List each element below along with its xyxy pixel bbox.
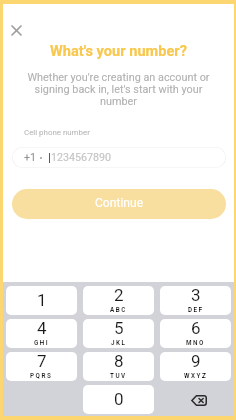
staticText: MNO	[186, 339, 205, 346]
button[interactable]: Backspace	[160, 385, 231, 414]
button[interactable]: 8	[83, 352, 154, 381]
staticText: What's your number?	[3, 42, 234, 59]
button[interactable]: +1	[12, 147, 226, 168]
staticText: Cell phone number	[24, 128, 90, 137]
staticText: 1	[37, 290, 47, 310]
staticText: 5	[114, 319, 124, 338]
staticText: +1	[24, 151, 37, 164]
staticText: PQRS	[30, 372, 53, 379]
button[interactable]: 5	[83, 319, 154, 348]
staticText: TUV	[110, 372, 127, 379]
staticText: 0	[114, 389, 124, 409]
staticText: 2	[114, 286, 124, 305]
staticText: 7	[37, 352, 47, 371]
staticText: DEF	[188, 306, 204, 313]
staticText: Whether you're creating an account or si…	[20, 71, 217, 108]
button[interactable]: 2	[83, 286, 154, 315]
button[interactable]: 1	[6, 286, 77, 315]
staticText: 3	[191, 286, 201, 305]
staticText: 9	[191, 352, 201, 371]
button[interactable]: 7	[6, 352, 77, 381]
button[interactable]: 3	[160, 286, 231, 315]
button[interactable]: 6	[160, 319, 231, 348]
staticText: ABC	[110, 306, 127, 313]
staticText: 4	[37, 319, 47, 338]
staticText: WXYZ	[184, 372, 208, 379]
staticText: 6	[191, 319, 201, 338]
staticText: 1234567890	[51, 151, 112, 164]
button[interactable]: Close	[7, 21, 26, 40]
button[interactable]: 9	[160, 352, 231, 381]
button[interactable]: Continue	[12, 189, 226, 219]
staticText: Continue	[95, 196, 144, 210]
button[interactable]: 4	[6, 319, 77, 348]
staticText: 8	[114, 352, 124, 371]
button[interactable]: 0	[83, 385, 154, 414]
staticText: JKL	[111, 339, 127, 346]
staticText: GHI	[34, 339, 50, 346]
